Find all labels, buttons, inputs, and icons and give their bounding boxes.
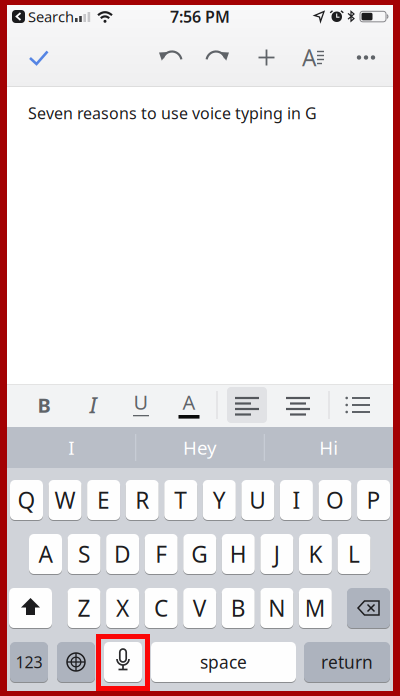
- button[interactable]: E: [87, 480, 120, 520]
- staticText: space: [200, 650, 247, 673]
- button[interactable]: A: [29, 534, 62, 574]
- button[interactable]: Underline: [124, 388, 158, 422]
- staticText: K: [308, 539, 322, 569]
- staticText: S: [78, 539, 90, 569]
- staticText: V: [193, 593, 207, 623]
- button[interactable]: H: [222, 534, 255, 574]
- staticText: 123: [15, 651, 42, 673]
- button[interactable]: S: [68, 534, 101, 574]
- button[interactable]: Numbers: [10, 642, 48, 682]
- button[interactable]: Undo: [151, 37, 191, 77]
- button[interactable]: Hi: [265, 427, 392, 468]
- staticText: B: [37, 392, 50, 418]
- staticText: O: [326, 485, 344, 515]
- staticText: Search: [28, 7, 74, 26]
- staticText: Hi: [319, 435, 338, 460]
- staticText: G: [191, 539, 208, 569]
- staticText: X: [116, 593, 129, 623]
- staticText: I: [68, 435, 74, 460]
- button[interactable]: Done: [19, 37, 59, 77]
- button[interactable]: Format: [299, 38, 335, 76]
- button[interactable]: C: [145, 588, 178, 628]
- button[interactable]: Z: [67, 588, 100, 628]
- button[interactable]: Bulleted list: [339, 388, 375, 421]
- button[interactable]: Insert: [246, 37, 286, 77]
- button[interactable]: T: [164, 480, 197, 520]
- button[interactable]: N: [260, 588, 293, 628]
- button[interactable]: I: [280, 480, 313, 520]
- button[interactable]: P: [357, 480, 390, 520]
- button[interactable]: Q: [10, 480, 43, 520]
- staticText: Y: [213, 485, 226, 515]
- button[interactable]: K: [299, 534, 332, 574]
- button[interactable]: I: [8, 427, 135, 468]
- button[interactable]: D: [106, 534, 139, 574]
- button[interactable]: R: [126, 480, 159, 520]
- staticText: U: [133, 389, 148, 415]
- button[interactable]: Align left: [227, 387, 267, 423]
- staticText: P: [366, 485, 380, 515]
- button[interactable]: Back to Search: [12, 8, 80, 24]
- staticText: U: [249, 485, 266, 515]
- button[interactable]: G: [183, 534, 216, 574]
- button[interactable]: O: [318, 480, 351, 520]
- staticText: I: [292, 485, 300, 515]
- button[interactable]: J: [260, 534, 293, 574]
- button[interactable]: U: [241, 480, 274, 520]
- button[interactable]: Align center: [278, 387, 318, 423]
- staticText: A: [38, 539, 52, 569]
- staticText: E: [97, 485, 110, 515]
- button[interactable]: Space: [151, 642, 296, 682]
- button[interactable]: Dictate: [104, 642, 142, 682]
- staticText: T: [174, 485, 187, 515]
- staticText: J: [274, 539, 280, 569]
- staticText: W: [55, 485, 76, 515]
- staticText: F: [155, 539, 167, 569]
- button[interactable]: X: [106, 588, 139, 628]
- button[interactable]: W: [49, 480, 82, 520]
- staticText: D: [114, 539, 131, 569]
- button[interactable]: M: [299, 588, 332, 628]
- staticText: H: [230, 539, 247, 569]
- button[interactable]: V: [183, 588, 216, 628]
- button[interactable]: Shift: [9, 588, 52, 628]
- staticText: C: [154, 593, 168, 623]
- staticText: R: [135, 485, 149, 515]
- staticText: return: [321, 650, 373, 673]
- button[interactable]: Italic: [76, 388, 110, 422]
- staticText: M: [305, 593, 326, 623]
- button[interactable]: Text color: [172, 388, 206, 422]
- button[interactable]: L: [337, 534, 370, 574]
- button[interactable]: Redo: [197, 37, 237, 77]
- button[interactable]: More: [350, 38, 386, 76]
- button[interactable]: Bold: [27, 388, 61, 422]
- staticText: 7:56 PM: [170, 6, 230, 27]
- staticText: B: [231, 593, 246, 623]
- staticText: A: [302, 42, 316, 72]
- staticText: Z: [77, 593, 90, 623]
- staticText: Seven reasons to use voice typing in G: [28, 102, 317, 124]
- staticText: N: [268, 593, 285, 623]
- button[interactable]: B: [222, 588, 255, 628]
- staticText: L: [348, 539, 360, 569]
- staticText: I: [89, 391, 96, 419]
- button[interactable]: Delete: [347, 588, 390, 628]
- button[interactable]: Y: [203, 480, 236, 520]
- button[interactable]: F: [145, 534, 178, 574]
- button[interactable]: Next keyboard: [57, 642, 95, 682]
- staticText: Q: [17, 485, 35, 515]
- staticText: A: [182, 389, 195, 415]
- button[interactable]: Hey: [136, 427, 263, 468]
- staticText: Hey: [183, 435, 217, 460]
- button[interactable]: Return: [304, 642, 390, 682]
